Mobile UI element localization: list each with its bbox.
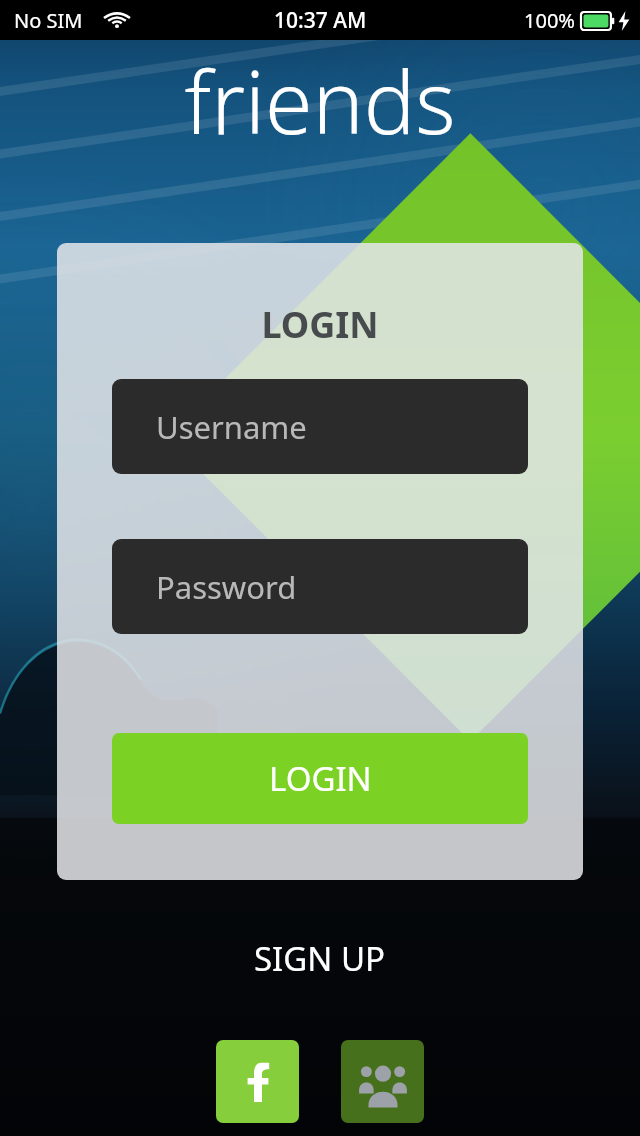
staticText: Username	[156, 406, 307, 448]
button[interactable]: Sign in with Friends	[341, 1040, 424, 1123]
staticText: SIGN UP	[254, 936, 386, 981]
button[interactable]: Username	[112, 379, 528, 474]
staticText: 10:37 AM	[274, 6, 367, 35]
staticText: Password	[156, 566, 297, 608]
staticText: 100%	[524, 7, 575, 34]
staticText: No SIM	[14, 7, 83, 34]
button[interactable]: Password	[112, 539, 528, 634]
staticText: LOGIN	[269, 756, 372, 801]
staticText: friends	[0, 42, 640, 159]
staticText: LOGIN	[57, 300, 583, 349]
button[interactable]: LOGIN	[112, 733, 528, 824]
button[interactable]: SIGN UP	[0, 930, 640, 986]
button[interactable]: Sign in with Facebook	[216, 1040, 299, 1123]
